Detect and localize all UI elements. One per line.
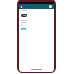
button[interactable]: Profile (49, 5, 52, 8)
button[interactable] (21, 14, 27, 17)
button[interactable] (21, 28, 26, 30)
